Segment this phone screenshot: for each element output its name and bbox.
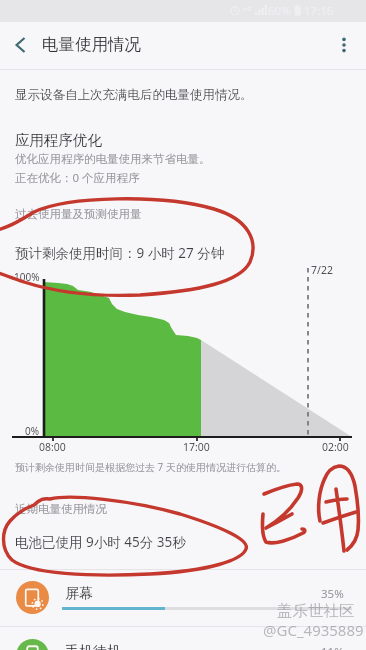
button[interactable]: 手机待机 [0,628,366,650]
staticText: 手机待机 [65,643,121,650]
staticText: 屏幕 [65,585,93,603]
staticText: 02:00 [322,440,349,454]
staticText: 电池已使用 9小时 45分 35秒 [15,533,186,551]
staticText: 08:00 [39,440,66,454]
button[interactable]: More options [322,22,366,68]
staticText: 预计剩余使用时间是根据您过去 7 天的使用情况进行估算的。 [15,460,286,474]
staticText: 预计剩余使用时间：9 小时 27 分钟 [15,244,225,262]
staticText: 盖乐世社区 [277,601,355,621]
staticText: 0% [25,424,40,438]
staticText: 电量使用情况 [42,34,141,55]
staticText: 17:00 [183,440,210,454]
staticText: 35% [321,586,344,602]
staticText: 100% [14,270,40,284]
button[interactable]: 屏幕 [0,570,366,627]
staticText: @GC_4935889 [263,620,364,640]
staticText: 显示设备自上次充满电后的电量使用情况。 [15,87,253,103]
staticText: 7/22 [311,263,333,277]
button[interactable]: Back [0,22,42,68]
staticText: 应用程序优化 [15,131,102,149]
staticText: 11% [321,644,344,650]
staticText: 正在优化：0 个应用程序 [15,170,140,186]
staticText: 优化应用程序的电量使用来节省电量。 [15,152,211,166]
staticText: 近期电量使用情况 [15,502,107,516]
staticText: 过去使用量及预测使用量 [15,207,142,221]
staticText: 60% [268,3,291,19]
